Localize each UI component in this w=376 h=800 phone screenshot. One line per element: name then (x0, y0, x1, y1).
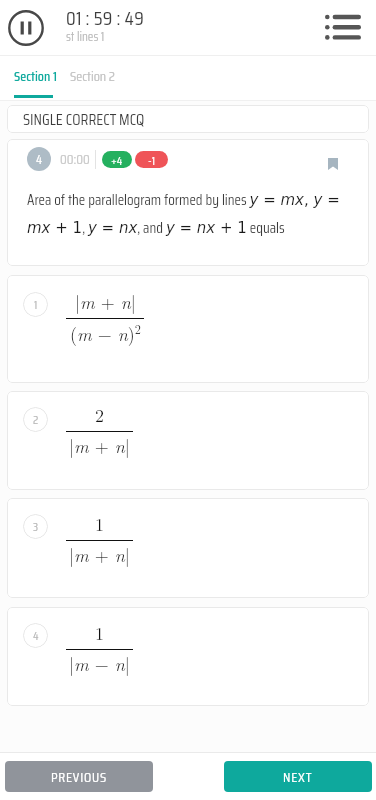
staticText: st lines 1 (66, 26, 105, 46)
staticText: |m + n| (69, 542, 130, 568)
button[interactable]: 3 (7, 498, 369, 598)
staticText: |m + n| (69, 433, 130, 459)
button[interactable]: Section 2 (70, 59, 115, 93)
staticText: 4 (36, 149, 43, 169)
staticText: -1 (148, 151, 155, 168)
staticText: 1 (95, 620, 104, 646)
staticText: 2 (95, 402, 104, 428)
staticText: Section 2 (70, 65, 115, 87)
staticText: 2 (33, 410, 39, 429)
staticText: 1 (95, 511, 104, 537)
staticText: 1 (34, 295, 38, 314)
staticText: NEXT (283, 766, 313, 788)
staticText: 3 (33, 517, 39, 536)
button[interactable]: Section 1 (14, 59, 57, 93)
staticText: |m + n| (75, 289, 136, 315)
staticText: 4 (33, 626, 39, 645)
button[interactable]: Pause (4, 6, 48, 50)
staticText: (m − n)2 (70, 320, 141, 346)
staticText: SINGLE CORRECT MCQ (23, 107, 145, 132)
button[interactable]: Bookmark (320, 151, 346, 177)
staticText: 01 : 59 : 49 (66, 2, 144, 33)
staticText: 00:00 (60, 148, 90, 170)
button[interactable]: 1 (7, 275, 369, 383)
button[interactable]: PREVIOUS (5, 761, 153, 792)
button[interactable]: Question list (321, 6, 365, 50)
button[interactable]: NEXT (224, 761, 372, 792)
staticText: +4 (111, 151, 123, 168)
staticText: PREVIOUS (51, 766, 108, 788)
staticText: |m − n| (69, 651, 130, 677)
button[interactable]: 2 (7, 391, 369, 490)
button[interactable]: 4 (7, 607, 369, 706)
staticText: Section 1 (14, 65, 57, 87)
staticText: Area of the parallelogram formed by line… (27, 188, 346, 239)
